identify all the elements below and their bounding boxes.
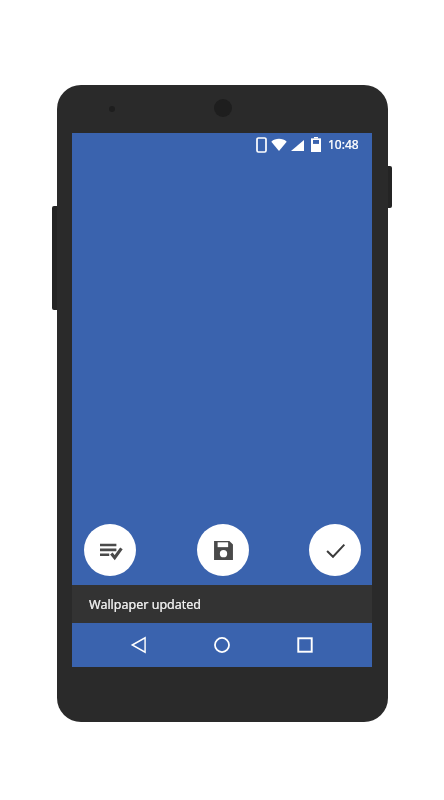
button[interactable]: Apply wallpaper — [309, 524, 361, 576]
button[interactable]: Back — [114, 623, 164, 667]
staticText: 10:48 — [328, 136, 359, 152]
button[interactable]: Recent apps — [280, 623, 330, 667]
button[interactable]: Shuffle wallpapers — [84, 524, 136, 576]
button[interactable]: Save wallpaper — [197, 524, 249, 576]
staticText: Wallpaper updated — [89, 596, 202, 613]
button[interactable]: Home — [197, 623, 247, 667]
button[interactable]: Wallpaper updated — [72, 585, 372, 623]
